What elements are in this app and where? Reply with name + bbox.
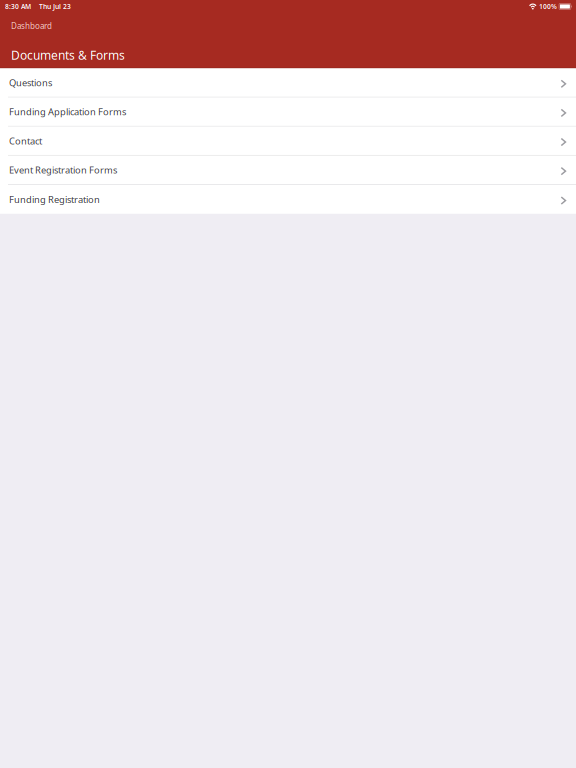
- button[interactable]: Questions: [0, 68, 576, 98]
- button[interactable]: Contact: [0, 127, 576, 156]
- button[interactable]: Event Registration Forms: [0, 156, 576, 185]
- staticText: Questions: [9, 76, 52, 89]
- staticText: Contact: [9, 135, 42, 147]
- button[interactable]: Funding Application Forms: [0, 98, 576, 127]
- staticText: Event Registration Forms: [9, 164, 117, 176]
- button[interactable]: Funding Registration: [0, 185, 576, 214]
- staticText: Funding Registration: [9, 193, 100, 206]
- staticText: Dashboard: [11, 21, 52, 31]
- staticText: 8:30 AM: [5, 2, 31, 11]
- staticText: Funding Application Forms: [9, 105, 126, 118]
- staticText: Thu Jul 23: [39, 2, 71, 11]
- staticText: 100%: [539, 2, 557, 11]
- staticText: Documents & Forms: [11, 47, 125, 63]
- button[interactable]: Dashboard: [0, 17, 576, 35]
